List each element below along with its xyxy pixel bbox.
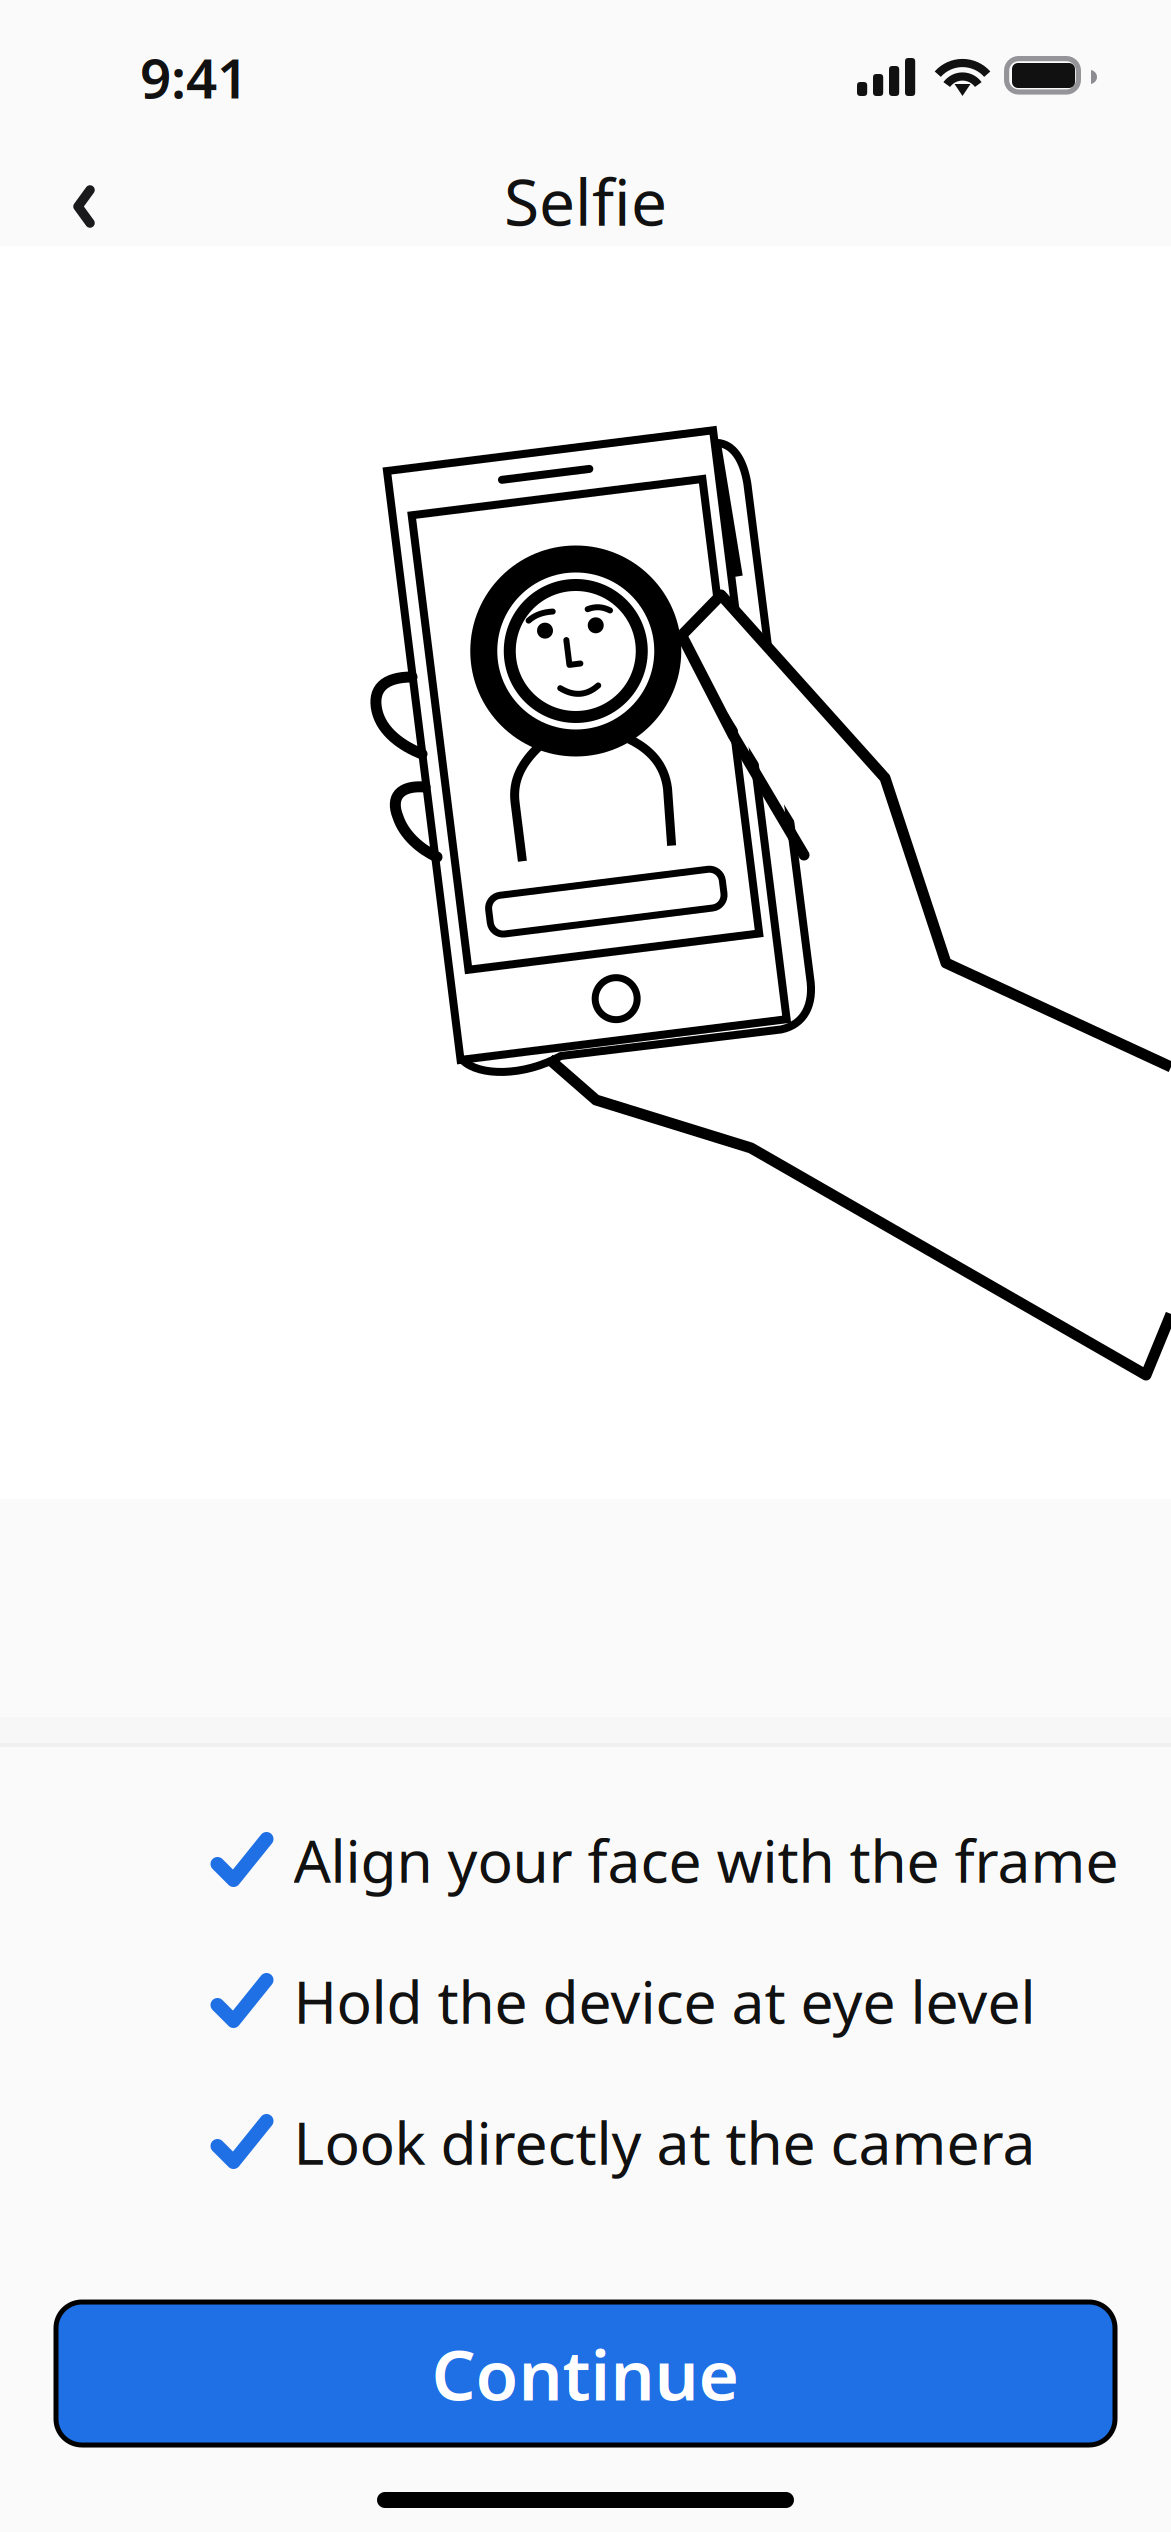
staticText: Selfie	[504, 158, 667, 243]
staticText: Continue	[431, 2327, 739, 2420]
staticText: Hold the device at eye level	[293, 1962, 1035, 2040]
button[interactable]: Back	[0, 128, 147, 246]
staticText: Look directly at the camera	[293, 2103, 1035, 2181]
staticText: 9:41	[140, 41, 248, 114]
button[interactable]: Continue	[56, 2302, 1115, 2445]
staticText: Align your face with the frame	[293, 1821, 1118, 1899]
